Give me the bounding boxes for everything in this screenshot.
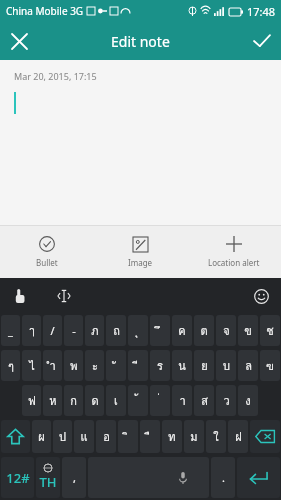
staticText: ช [266, 322, 274, 339]
button[interactable]: ท [162, 420, 182, 453]
button[interactable]: น [172, 350, 192, 381]
staticText: ง [245, 392, 251, 409]
staticText: Mar 20, 2015, 17:15 [14, 70, 97, 82]
staticText: ภ [91, 322, 99, 339]
button[interactable]: อ [96, 420, 116, 453]
button[interactable]: ผ [32, 420, 51, 453]
button[interactable]: ล [238, 350, 258, 381]
button[interactable]: ค [172, 315, 192, 346]
button[interactable]: ส [194, 385, 214, 416]
staticText: ย [201, 357, 208, 374]
button[interactable]: บ [216, 350, 236, 381]
staticText: ร [157, 357, 163, 374]
other: Space [88, 457, 209, 498]
button[interactable]: 12# [1, 457, 34, 498]
button[interactable]: ้ [128, 385, 148, 416]
button[interactable]: ร [150, 350, 170, 381]
staticText: ฟ [28, 392, 36, 409]
staticText: ห [49, 392, 57, 409]
button[interactable]: ถ [106, 315, 126, 346]
staticText: ล [245, 357, 252, 374]
button[interactable]: ก [64, 385, 83, 416]
button[interactable]: Shift [1, 420, 30, 453]
staticText: จ [223, 322, 230, 339]
button[interactable]: _ [1, 315, 20, 346]
staticText: 12# [6, 469, 30, 487]
button[interactable]: / [43, 315, 62, 346]
button[interactable]: เ [106, 385, 126, 416]
button[interactable]: ั [106, 350, 126, 381]
staticText: , [73, 470, 76, 485]
button[interactable]: ย [194, 350, 214, 381]
button[interactable]: - [64, 315, 83, 346]
staticText: . [222, 470, 225, 485]
button[interactable]: Save [243, 22, 281, 60]
button[interactable]: พ [64, 350, 83, 381]
button[interactable]: Location alert [187, 226, 281, 278]
staticText: า [179, 392, 186, 409]
button[interactable]: , [62, 457, 86, 498]
staticText: Edit note [111, 32, 170, 51]
staticText: ก [70, 392, 77, 409]
button[interactable]: ื [140, 420, 160, 453]
button[interactable]: จ [216, 315, 236, 346]
staticText: 17:48 [247, 4, 276, 19]
staticText: - [72, 323, 76, 338]
button[interactable]: Enter [237, 457, 280, 498]
button[interactable]: ด [85, 385, 104, 416]
button[interactable]: . [211, 457, 235, 498]
button[interactable]: ต [194, 315, 214, 346]
button[interactable]: ม [184, 420, 204, 453]
staticText: ว [223, 392, 230, 409]
button[interactable]: ใ [206, 420, 226, 453]
staticText: ด [91, 392, 99, 409]
button[interactable]: ฝ [228, 420, 248, 453]
button[interactable]: ะ [85, 350, 104, 381]
button[interactable]: ง [238, 385, 258, 416]
button[interactable]: Backspace [250, 420, 280, 453]
staticText: ม [190, 428, 198, 445]
button[interactable]: ึ [150, 315, 170, 346]
button[interactable]: ภ [85, 315, 104, 346]
button[interactable]: ไ [22, 350, 41, 381]
staticText: ๅ [29, 322, 35, 339]
button[interactable]: Close [0, 22, 38, 60]
other: Backspace [250, 420, 280, 453]
staticText: ถ [113, 322, 120, 339]
staticText: ผ [38, 428, 45, 445]
staticText: China Mobile 3G [6, 4, 84, 18]
button[interactable]: ข [238, 315, 258, 346]
button[interactable]: ๆ [1, 350, 20, 381]
staticText: ป [59, 428, 66, 445]
staticText: ใ [213, 428, 219, 445]
button[interactable]: ป [53, 420, 72, 453]
button[interactable]: Image [93, 226, 187, 278]
staticText: Bullet [36, 257, 58, 268]
staticText: ไ [29, 357, 35, 374]
button[interactable]: ุ [128, 315, 148, 346]
button[interactable]: Handwriting [8, 284, 32, 308]
button[interactable]: Emoji [249, 284, 273, 308]
button[interactable]: ว [216, 385, 236, 416]
button[interactable]: แ [74, 420, 94, 453]
button[interactable]: ฃ [260, 350, 280, 381]
button[interactable]: ห [43, 385, 62, 416]
button[interactable]: ช [260, 315, 280, 346]
button[interactable]: ำ [43, 350, 62, 381]
button[interactable]: ี [128, 350, 148, 381]
staticText: เ [114, 392, 118, 409]
button[interactable]: TH [36, 457, 60, 498]
button[interactable]: ่ [150, 385, 170, 416]
staticText: / [50, 323, 55, 338]
button[interactable]: Space [88, 457, 209, 498]
staticText: ส [201, 392, 208, 409]
button[interactable]: Cursor control [52, 284, 76, 308]
button[interactable]: ฟ [22, 385, 41, 416]
button[interactable]: า [172, 385, 192, 416]
button[interactable]: Bullet [0, 226, 93, 278]
button[interactable]: ๅ [22, 315, 41, 346]
button[interactable]: ิ [118, 420, 138, 453]
staticText: ะ [92, 357, 98, 374]
staticText: ท [168, 428, 176, 445]
staticText: TH [39, 473, 57, 491]
